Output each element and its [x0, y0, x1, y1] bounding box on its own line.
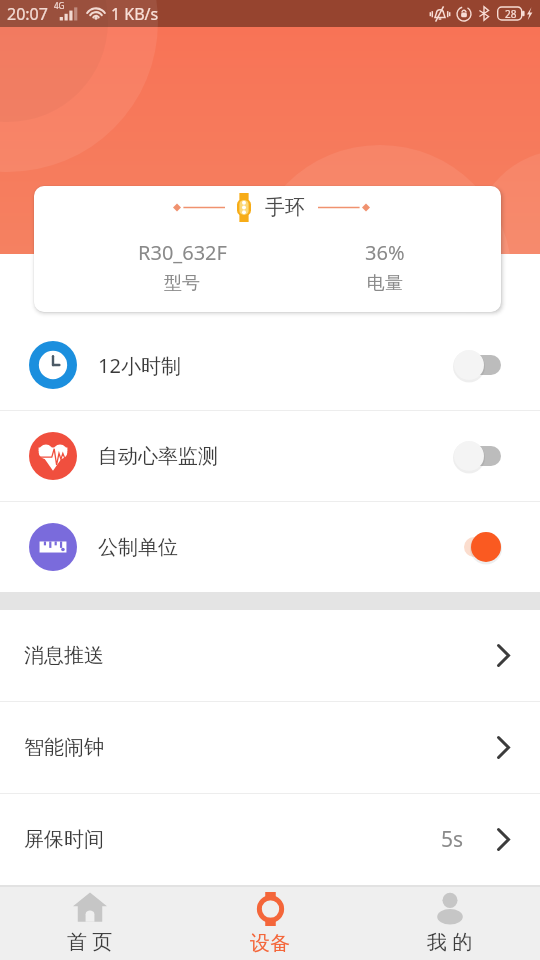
staticText: 4G — [54, 0, 65, 11]
button[interactable]: 12小时制 — [0, 320, 540, 410]
staticText: 5s — [441, 825, 464, 854]
staticText: 手环 — [265, 195, 305, 220]
staticText: 自动心率监测 — [98, 444, 218, 469]
button[interactable]: 首 页 — [0, 892, 180, 955]
staticText: 20:07 — [7, 3, 48, 25]
button[interactable]: 消息推送 — [0, 610, 540, 701]
staticText: 设备 — [250, 931, 290, 956]
staticText: 型号 — [164, 272, 200, 295]
staticText: 12小时制 — [98, 352, 181, 379]
staticText: 我 的 — [427, 928, 473, 955]
staticText: 28 — [505, 7, 517, 21]
button[interactable]: 公制单位 — [0, 502, 540, 592]
staticText: 电量 — [367, 272, 403, 295]
button[interactable]: Switch off — [454, 440, 501, 472]
staticText: 首 页 — [67, 928, 113, 955]
button[interactable]: 手环 — [34, 186, 501, 312]
button[interactable]: 自动心率监测 — [0, 411, 540, 501]
button[interactable]: 我 的 — [360, 892, 540, 955]
button[interactable]: 智能闹钟 — [0, 702, 540, 793]
staticText: 1 KB/s — [111, 3, 159, 25]
staticText: 屏保时间 — [24, 827, 104, 852]
button[interactable]: 屏保时间 — [0, 794, 540, 885]
staticText: 公制单位 — [98, 535, 178, 560]
staticText: 36% — [365, 239, 405, 266]
staticText: 智能闹钟 — [24, 735, 104, 760]
button[interactable]: 设备 — [180, 892, 360, 956]
staticText: 消息推送 — [24, 643, 104, 668]
staticText: R30_632F — [138, 239, 227, 266]
button[interactable]: Switch off — [454, 349, 501, 381]
button[interactable]: Switch on — [454, 531, 501, 563]
